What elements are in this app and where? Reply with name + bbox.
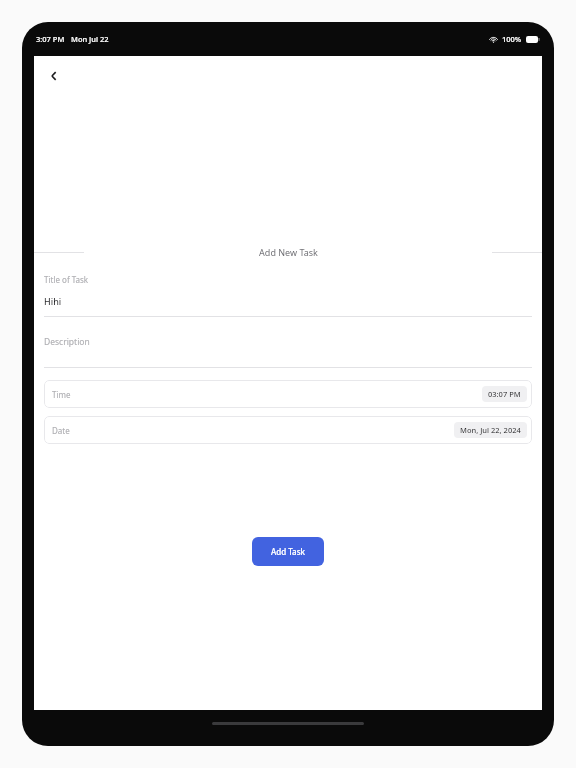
staticText: Mon, Jul 22, 2024: [460, 425, 521, 435]
staticText: 3:07 PM: [36, 34, 65, 44]
staticText: Description: [44, 336, 90, 348]
staticText: Mon Jul 22: [71, 34, 109, 44]
staticText: Time: [52, 389, 71, 400]
button[interactable]: Title of Task: [44, 266, 532, 317]
button[interactable]: Back: [38, 60, 70, 92]
button[interactable]: Description: [44, 317, 532, 368]
staticText: Title of Task: [44, 274, 89, 285]
button[interactable]: Add Task: [252, 537, 324, 566]
staticText: Date: [52, 425, 70, 436]
button[interactable]: Time: [44, 380, 532, 408]
staticText: Hihi: [44, 295, 62, 307]
staticText: Add Task: [271, 546, 306, 557]
staticText: 03:07 PM: [488, 389, 521, 399]
staticText: Add New Task: [259, 246, 318, 258]
button[interactable]: Date: [44, 416, 532, 444]
staticText: 100%: [502, 34, 522, 44]
